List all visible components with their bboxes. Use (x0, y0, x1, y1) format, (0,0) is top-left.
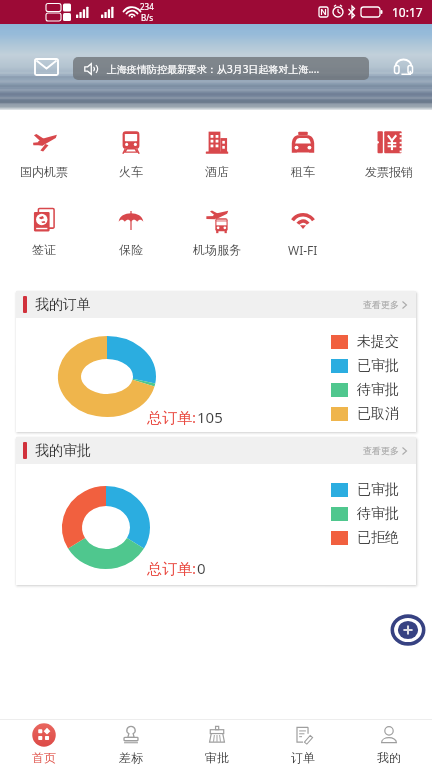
staticText: 火车 (119, 164, 143, 179)
button[interactable]: 首页 (0, 720, 87, 768)
staticText: 234 (140, 1, 154, 12)
staticText: 机场服务 (193, 242, 241, 257)
button[interactable]: 上海疫情防控最新要求：从3月3日起将对上海.... (73, 57, 369, 80)
staticText: 已审批 (357, 481, 399, 499)
button[interactable]: 我的 (346, 720, 432, 768)
button[interactable]: 我的订单 (16, 291, 416, 318)
staticText: 上海疫情防控最新要求：从3月3日起将对上海.... (107, 62, 320, 76)
staticText: 已拒绝 (357, 529, 399, 547)
button[interactable]: 我的审批 (16, 437, 416, 464)
button[interactable]: 机场服务 (174, 195, 260, 259)
staticText: 查看更多 (363, 299, 399, 310)
staticText: 未提交 (357, 333, 399, 351)
staticText: 待审批 (357, 381, 399, 399)
button[interactable]: Messages (29, 50, 63, 84)
staticText: 待审批 (357, 505, 399, 523)
staticText: 发票报销 (365, 164, 413, 179)
button[interactable]: 国内机票 (0, 117, 87, 181)
staticText: 10:17 (392, 4, 423, 20)
staticText: 0 (197, 558, 206, 578)
staticText: 首页 (32, 750, 56, 765)
staticText: 我的订单 (35, 296, 91, 314)
button[interactable]: 查看更多 (354, 299, 416, 310)
staticText: 我的审批 (35, 442, 91, 460)
staticText: 已取消 (357, 405, 399, 423)
button[interactable]: 审批 (174, 720, 260, 768)
staticText: 105 (197, 407, 223, 427)
staticText: 租车 (291, 164, 315, 179)
button[interactable]: 租车 (260, 117, 346, 181)
button[interactable]: 签证 (0, 195, 87, 259)
staticText: 签证 (32, 242, 56, 257)
button[interactable]: 保险 (87, 195, 174, 259)
button[interactable]: Add new trip (389, 613, 427, 647)
staticText: 国内机票 (20, 164, 68, 179)
staticText: 订单 (291, 750, 315, 765)
button[interactable]: 发票报销 (346, 117, 432, 181)
button[interactable]: 酒店 (174, 117, 260, 181)
button[interactable]: Customer support (386, 50, 420, 84)
staticText: 查看更多 (363, 445, 399, 456)
button[interactable]: 订单 (260, 720, 346, 768)
staticText: 保险 (119, 242, 143, 257)
staticText: B/s (141, 12, 154, 23)
button[interactable]: 查看更多 (354, 445, 416, 456)
staticText: 总订单: (147, 407, 197, 427)
button[interactable]: 差标 (87, 720, 174, 768)
staticText: 差标 (119, 750, 143, 765)
staticText: 审批 (205, 750, 229, 765)
staticText: 已审批 (357, 357, 399, 375)
staticText: 我的 (377, 750, 401, 765)
staticText: WI-FI (288, 242, 318, 258)
staticText: 总订单: (147, 558, 197, 578)
button[interactable]: WI-FI (260, 195, 346, 260)
button[interactable]: 火车 (87, 117, 174, 181)
staticText: 酒店 (205, 164, 229, 179)
